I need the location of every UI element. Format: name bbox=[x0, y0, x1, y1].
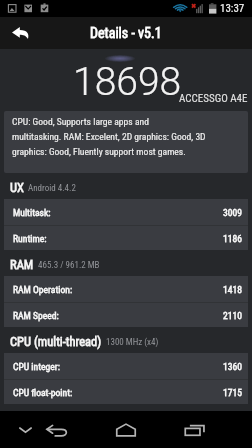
button[interactable]: Multitask: bbox=[4, 199, 248, 225]
button[interactable]: Back bbox=[0, 17, 40, 49]
button[interactable]: Home bbox=[110, 414, 142, 446]
button[interactable]: Runtime: bbox=[4, 226, 248, 250]
button[interactable]: RAM Operation: bbox=[4, 276, 248, 302]
staticText: RAM Speed: bbox=[13, 310, 59, 321]
staticText: 1300 MHz (x4) bbox=[110, 414, 163, 425]
button[interactable]: Back bbox=[42, 415, 72, 445]
staticText: RAM bbox=[10, 257, 34, 272]
staticText: Android 4.4.2 bbox=[28, 183, 76, 194]
staticText: ACCESSGO A4E bbox=[179, 92, 248, 105]
staticText: 1715 bbox=[223, 387, 242, 398]
staticText: CPU (multi-thread) bbox=[10, 334, 102, 349]
staticText: Details - v5.1 bbox=[90, 25, 162, 41]
staticText: 1300 MHz (x4) bbox=[106, 337, 159, 348]
staticText: CPU integer: bbox=[13, 361, 60, 372]
staticText: Runtime: bbox=[13, 233, 47, 244]
staticText: 1360 bbox=[223, 361, 242, 372]
staticText: 465.3 / 961.2 MB bbox=[38, 260, 100, 271]
staticText: 3009 bbox=[223, 207, 242, 218]
staticText: CPU float-point: bbox=[13, 387, 73, 398]
button[interactable]: Recent apps bbox=[178, 414, 210, 446]
staticText: 13:37 bbox=[220, 2, 245, 15]
staticText: CPU: Good, Supports large apps and multi… bbox=[12, 116, 206, 157]
staticText: CPU (single-thread) bbox=[10, 411, 106, 426]
staticText: RAM Operation: bbox=[13, 284, 73, 295]
staticText: 2110 bbox=[223, 310, 242, 321]
staticText: 1186 bbox=[223, 233, 242, 244]
staticText: UX bbox=[10, 180, 24, 195]
button[interactable]: CPU integer: bbox=[4, 353, 248, 379]
button[interactable]: RAM Speed: bbox=[4, 303, 248, 327]
staticText: 18698 bbox=[73, 59, 182, 105]
button[interactable]: CPU float-point: bbox=[4, 380, 248, 404]
staticText: Multitask: bbox=[13, 207, 51, 218]
staticText: 1418 bbox=[223, 284, 242, 295]
button[interactable]: Hide keyboard bbox=[12, 417, 38, 443]
